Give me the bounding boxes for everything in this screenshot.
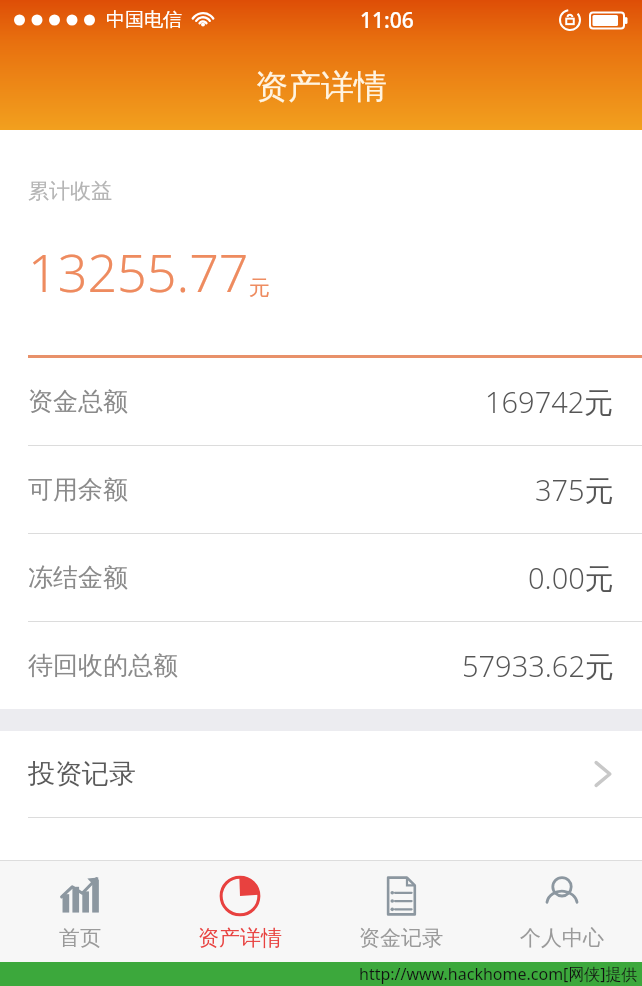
staticText: 投资记录 — [28, 757, 136, 791]
staticText: 11:06 — [360, 6, 414, 35]
staticText: 57933.62元 — [462, 646, 614, 686]
button[interactable]: 冻结金额 — [0, 534, 642, 621]
button[interactable]: 资金总额 — [0, 358, 642, 445]
staticText: 中国电信 — [106, 8, 182, 32]
staticText: 待回收的总额 — [28, 650, 178, 681]
button[interactable]: 首页 — [0, 861, 160, 962]
button[interactable]: 可用余额 — [0, 446, 642, 533]
staticText: 累计收益 — [28, 178, 112, 204]
staticText: http://www.hackhome.com[网侠]提供 — [359, 963, 638, 985]
staticText: 元 — [249, 275, 270, 301]
staticText: 冻结金额 — [28, 562, 128, 593]
button[interactable]: 投资记录 — [0, 731, 642, 817]
button[interactable]: 资金记录 — [320, 861, 481, 962]
staticText: 资金记录 — [359, 925, 443, 951]
staticText: 资金总额 — [28, 386, 128, 417]
staticText: 个人中心 — [520, 925, 604, 951]
button[interactable]: 个人中心 — [481, 861, 642, 962]
staticText: 13255.77 — [28, 236, 249, 307]
staticText: 375元 — [535, 470, 614, 510]
button[interactable]: 待回收的总额 — [0, 622, 642, 709]
staticText: 资产详情 — [255, 66, 387, 108]
staticText: 首页 — [59, 925, 101, 951]
staticText: 资产详情 — [198, 925, 282, 951]
button[interactable]: 资产详情 — [160, 861, 320, 962]
staticText: 可用余额 — [28, 474, 128, 505]
staticText: 169742元 — [485, 382, 614, 422]
staticText: 0.00元 — [528, 558, 614, 598]
